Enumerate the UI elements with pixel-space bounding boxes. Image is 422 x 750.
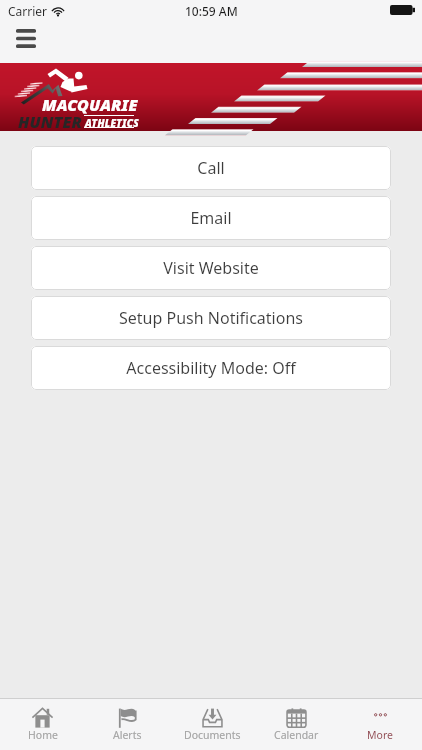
button[interactable]: Visit Website [31, 246, 391, 290]
staticText: Visit Website [163, 257, 259, 279]
staticText: Carrier [8, 3, 48, 19]
staticText: Home [28, 728, 58, 742]
button[interactable]: Calendar [254, 699, 338, 750]
button[interactable]: Home [0, 699, 85, 750]
staticText: More [367, 728, 393, 742]
staticText: MACQUARIE [42, 94, 138, 116]
button[interactable]: More [338, 699, 422, 750]
button[interactable]: Email [31, 196, 391, 240]
button[interactable]: Setup Push Notifications [31, 296, 391, 340]
button[interactable]: Documents [170, 699, 254, 750]
staticText: Setup Push Notifications [119, 307, 303, 329]
button[interactable]: Accessibility Mode: Off [31, 346, 391, 390]
button[interactable]: Alerts [85, 699, 170, 750]
button[interactable]: Call [31, 146, 391, 190]
staticText: ATHLETICS [85, 116, 140, 130]
button[interactable]: Menu [8, 24, 43, 57]
staticText: Email [190, 207, 232, 229]
staticText: Calendar [274, 728, 319, 742]
staticText: HUNTER [18, 111, 83, 133]
staticText: Alerts [113, 728, 142, 742]
staticText: Documents [184, 728, 241, 742]
staticText: Accessibility Mode: Off [126, 357, 296, 379]
staticText: Call [197, 157, 225, 179]
staticText: 10:59 AM [185, 3, 238, 19]
